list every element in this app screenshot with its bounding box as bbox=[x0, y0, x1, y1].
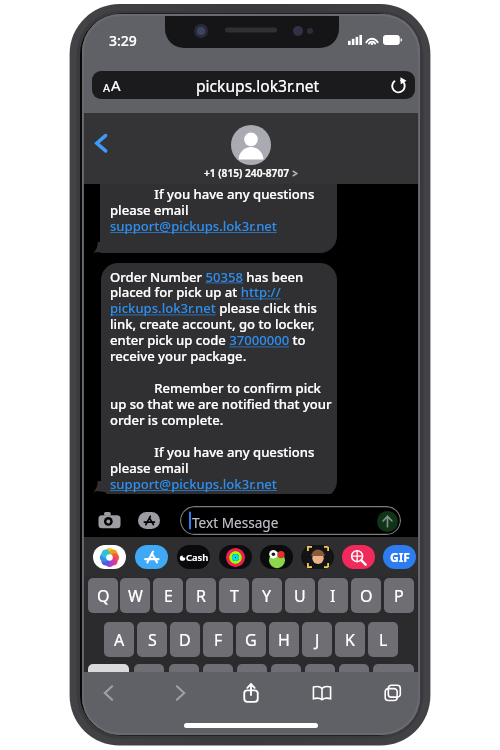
staticText: order is complete. If you have any quest… bbox=[110, 184, 334, 249]
staticText: J bbox=[315, 629, 320, 651]
button[interactable]: Text size bbox=[92, 71, 415, 99]
staticText: H bbox=[278, 629, 290, 651]
button[interactable]: Q bbox=[88, 578, 118, 613]
button[interactable]: Share bbox=[238, 680, 264, 706]
button[interactable]: App Store bbox=[138, 512, 160, 529]
button[interactable]: I bbox=[318, 578, 348, 613]
button[interactable]: J bbox=[302, 622, 332, 657]
button[interactable]: Order Number 50358 has been placed for p… bbox=[101, 263, 337, 498]
button[interactable]: Text size bbox=[103, 75, 121, 95]
button[interactable]: T bbox=[219, 578, 249, 613]
staticText: K bbox=[345, 629, 355, 651]
staticText: L bbox=[379, 629, 388, 651]
button[interactable]: O bbox=[351, 578, 381, 613]
button[interactable]: K bbox=[335, 622, 365, 657]
staticText: G bbox=[245, 629, 257, 651]
button[interactable] bbox=[169, 664, 199, 699]
button[interactable]: Memoji bbox=[301, 545, 334, 569]
staticText: P bbox=[394, 585, 404, 607]
button[interactable]: App Store bbox=[135, 545, 168, 569]
staticText: +1 (815) 240-8707 bbox=[204, 166, 290, 180]
button[interactable]: Text Message bbox=[180, 506, 401, 535]
staticText: A bbox=[103, 80, 111, 95]
button[interactable] bbox=[134, 664, 164, 699]
button[interactable]: +1 (815) 240-8707 bbox=[204, 125, 298, 180]
staticText: Q bbox=[97, 585, 110, 607]
button[interactable]: W bbox=[120, 578, 150, 613]
button[interactable]: Image Search bbox=[342, 545, 375, 569]
button[interactable]: Back bbox=[96, 680, 122, 706]
button[interactable]: L bbox=[368, 622, 398, 657]
button[interactable]: order is complete. If you have any quest… bbox=[100, 184, 337, 253]
button[interactable]: P bbox=[384, 578, 414, 613]
button[interactable]: Y bbox=[252, 578, 282, 613]
button[interactable]: E bbox=[153, 578, 183, 613]
staticText: U bbox=[294, 585, 306, 607]
button[interactable]: Tabs bbox=[380, 680, 406, 706]
staticText: 3:29 bbox=[109, 31, 137, 50]
staticText: Cash bbox=[186, 551, 209, 564]
button[interactable]: Forward bbox=[167, 680, 193, 706]
staticText: I bbox=[330, 585, 336, 607]
button[interactable]: S bbox=[137, 622, 167, 657]
staticText: D bbox=[179, 629, 191, 651]
button[interactable]: Bookmarks bbox=[309, 680, 335, 706]
button[interactable]: GIF bbox=[383, 545, 416, 569]
button[interactable]: Send bbox=[377, 511, 398, 532]
staticText: F bbox=[214, 629, 223, 651]
staticText: GIF bbox=[390, 549, 410, 565]
staticText: T bbox=[230, 585, 239, 607]
button[interactable]: Fitness bbox=[219, 545, 252, 569]
button[interactable]: Reload bbox=[389, 76, 408, 95]
button[interactable]: U bbox=[285, 578, 315, 613]
button[interactable]: G bbox=[236, 622, 266, 657]
staticText: E bbox=[164, 585, 173, 607]
staticText: S bbox=[148, 629, 157, 651]
staticText: A bbox=[114, 629, 125, 651]
button[interactable]: Camera bbox=[98, 511, 121, 529]
button[interactable]: Back bbox=[92, 128, 118, 155]
staticText: O bbox=[360, 585, 373, 607]
staticText: A bbox=[111, 75, 121, 95]
button[interactable]: H bbox=[269, 622, 299, 657]
button[interactable]: Photos bbox=[93, 545, 126, 569]
staticText: Order Number 50358 has been placed for p… bbox=[110, 268, 334, 493]
staticText: pickups.lok3r.net bbox=[196, 75, 320, 96]
button[interactable] bbox=[305, 664, 335, 699]
button[interactable]: F bbox=[203, 622, 233, 657]
button[interactable] bbox=[203, 664, 233, 699]
button[interactable] bbox=[339, 664, 369, 699]
button[interactable] bbox=[237, 664, 267, 699]
button[interactable] bbox=[271, 664, 301, 699]
staticText: Text Message bbox=[192, 513, 279, 532]
staticText: R bbox=[196, 585, 206, 607]
button[interactable]: Delete bbox=[373, 664, 414, 699]
button[interactable]: A bbox=[104, 622, 134, 657]
button[interactable]: Apple Cash bbox=[177, 545, 210, 569]
button[interactable]: D bbox=[170, 622, 200, 657]
button[interactable]: GamePigeon bbox=[260, 545, 293, 569]
staticText: Y bbox=[262, 585, 272, 607]
staticText: W bbox=[128, 585, 143, 607]
button[interactable]: R bbox=[186, 578, 216, 613]
button[interactable]: Shift bbox=[88, 664, 129, 699]
